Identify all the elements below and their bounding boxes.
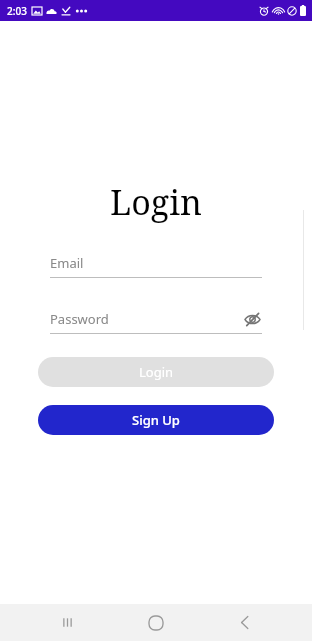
staticText: Sign Up: [132, 411, 180, 429]
button[interactable]: Sign Up: [38, 405, 274, 435]
staticText: Login: [110, 179, 202, 225]
button[interactable]: Login: [38, 357, 274, 387]
button[interactable]: Recent apps: [45, 604, 89, 641]
staticText: Password: [50, 310, 242, 328]
staticText: Email: [50, 254, 84, 272]
button[interactable]: Back: [223, 604, 267, 641]
button[interactable]: Email: [50, 249, 262, 278]
button[interactable]: Home: [134, 604, 178, 641]
button[interactable]: Password: [50, 305, 262, 333]
staticText: 2:03: [7, 4, 27, 18]
staticText: Login: [139, 363, 174, 381]
button[interactable]: Show password: [242, 309, 262, 329]
